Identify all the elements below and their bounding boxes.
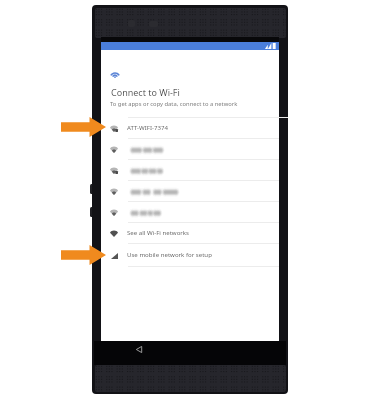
other: Callout arrow 1	[61, 117, 106, 137]
button[interactable]: Use mobile network for setup	[101, 244, 279, 267]
staticText: ATT-WIFI-7374	[127, 123, 168, 131]
staticText: To get apps or copy data, connect to a n…	[110, 100, 238, 108]
button[interactable]	[101, 181, 279, 202]
staticText: Connect to Wi-Fi	[111, 86, 180, 98]
button[interactable]	[101, 139, 279, 160]
other: Callout arrow 2	[61, 245, 106, 265]
button[interactable]	[101, 160, 279, 181]
button[interactable]: See all Wi-Fi networks	[101, 223, 279, 244]
button[interactable]	[101, 202, 279, 223]
staticText: See all Wi-Fi networks	[127, 228, 190, 236]
button[interactable]: ATT-WIFI-7374	[101, 118, 279, 139]
staticText: Use mobile network for setup	[127, 250, 212, 258]
button[interactable]: Back	[136, 346, 142, 353]
